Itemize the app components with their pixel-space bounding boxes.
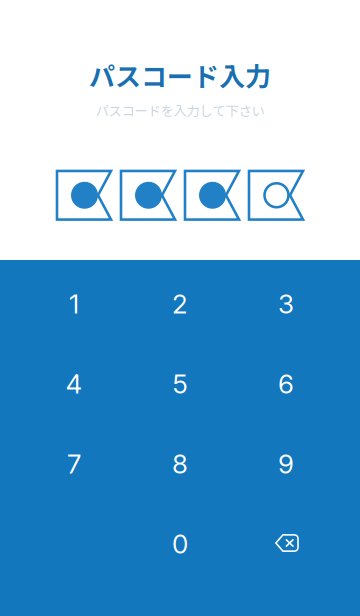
button[interactable]: Delete <box>233 504 339 584</box>
button[interactable]: 2 <box>127 264 233 344</box>
button[interactable]: 3 <box>233 264 339 344</box>
staticText: パスコード入力 <box>89 56 271 94</box>
button[interactable]: 7 <box>21 424 127 504</box>
button[interactable]: 5 <box>127 344 233 424</box>
staticText: 6 <box>278 368 294 400</box>
staticText: 5 <box>172 368 187 400</box>
staticText: 2 <box>172 288 188 320</box>
button[interactable]: 6 <box>233 344 339 424</box>
button[interactable]: 8 <box>127 424 233 504</box>
button[interactable]: 1 <box>21 264 127 344</box>
staticText: 0 <box>172 528 188 560</box>
staticText: パスコードを入力して下さい <box>95 101 264 120</box>
button[interactable]: 4 <box>21 344 127 424</box>
button[interactable]: 0 <box>127 504 233 584</box>
staticText: 3 <box>278 288 294 320</box>
staticText: 1 <box>69 288 79 320</box>
staticText: 4 <box>65 368 82 400</box>
staticText: 8 <box>172 448 188 480</box>
staticText: 7 <box>67 448 81 480</box>
staticText: 9 <box>278 448 294 480</box>
button[interactable]: 9 <box>233 424 339 504</box>
